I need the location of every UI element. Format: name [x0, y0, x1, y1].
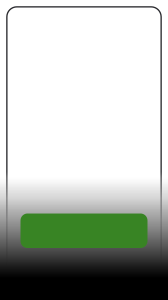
button[interactable]: Continue [20, 213, 147, 248]
